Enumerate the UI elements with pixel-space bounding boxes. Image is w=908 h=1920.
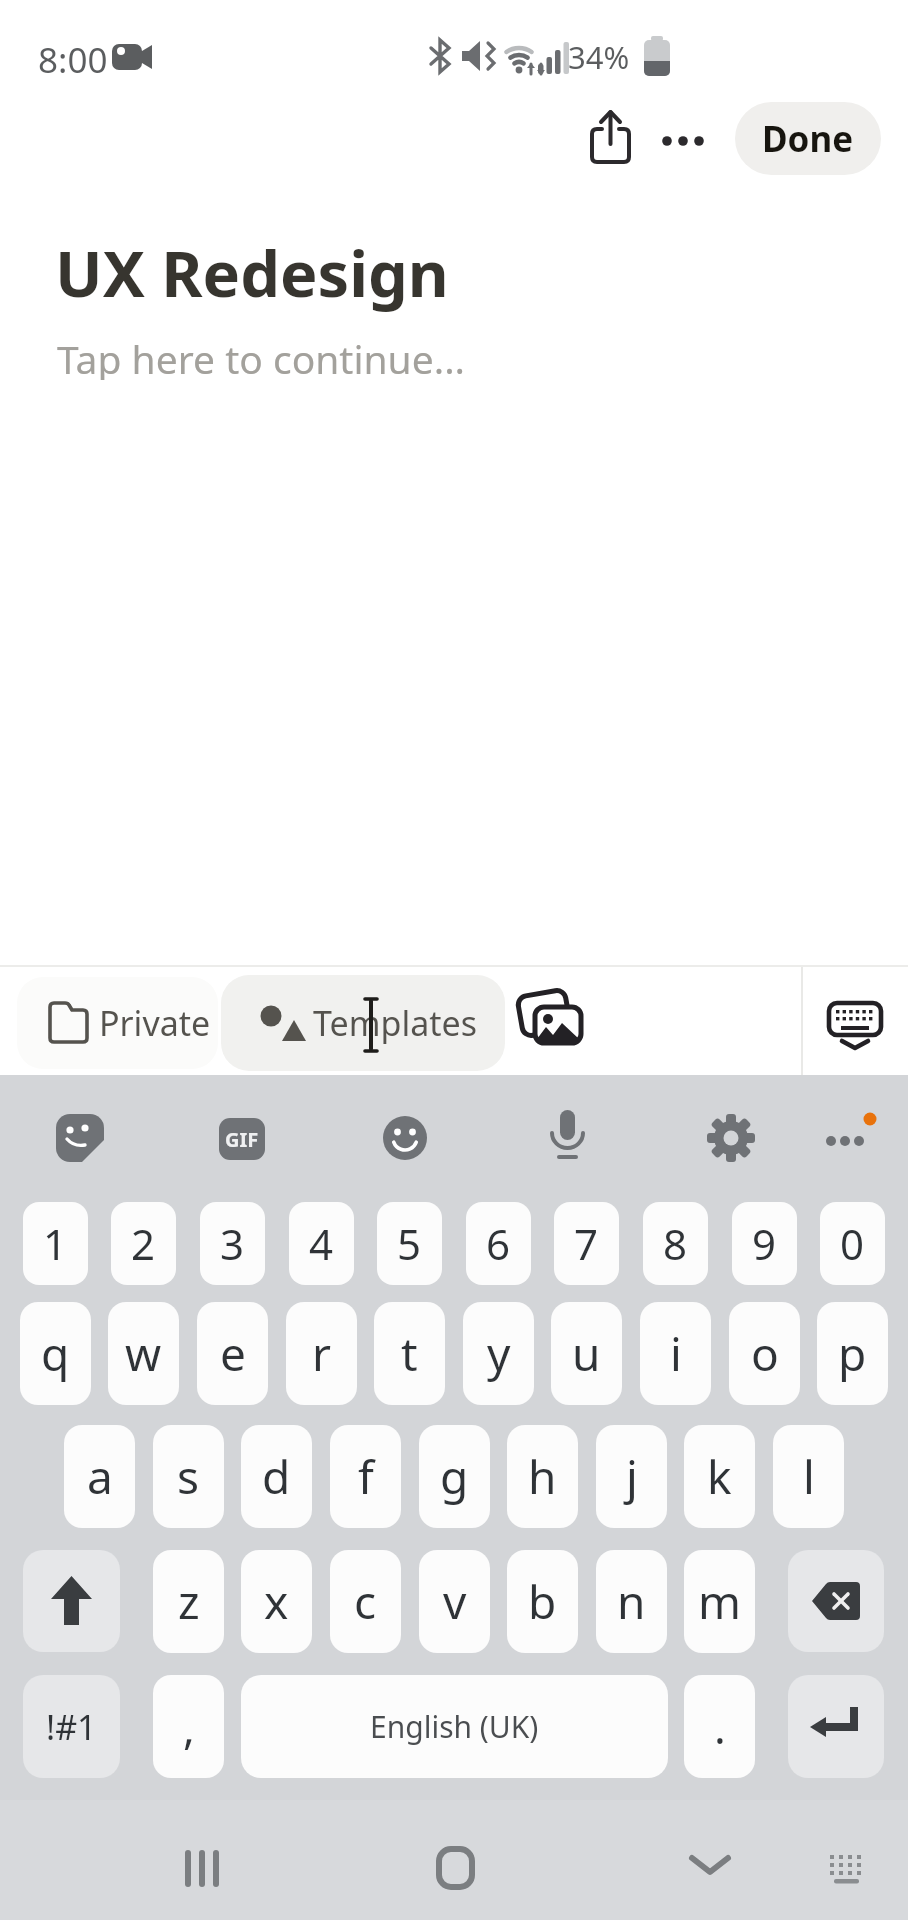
staticText: t: [401, 1322, 418, 1385]
button[interactable]: [383, 1116, 439, 1172]
button[interactable]: [512, 991, 586, 1065]
button[interactable]: l: [773, 1425, 844, 1528]
button[interactable]: p: [817, 1302, 888, 1405]
button[interactable]: [413, 1826, 497, 1910]
staticText: l: [803, 1445, 815, 1508]
staticText: e: [220, 1322, 246, 1385]
staticText: s: [177, 1445, 200, 1508]
staticText: 1: [43, 1215, 68, 1272]
staticText: English (UK): [370, 1706, 539, 1747]
staticText: k: [707, 1445, 732, 1508]
staticText: q: [41, 1322, 70, 1385]
staticText: !#1: [46, 1704, 97, 1750]
button[interactable]: [668, 1826, 752, 1910]
staticText: .: [714, 1697, 726, 1757]
staticText: m: [698, 1570, 742, 1633]
button[interactable]: c: [330, 1550, 401, 1653]
staticText: r: [312, 1322, 331, 1385]
staticText: GIF: [225, 1126, 259, 1153]
button[interactable]: 1: [23, 1202, 88, 1285]
button[interactable]: d: [241, 1425, 312, 1528]
staticText: z: [178, 1570, 200, 1633]
button[interactable]: a: [64, 1425, 135, 1528]
button[interactable]: [820, 993, 892, 1055]
staticText: d: [262, 1445, 291, 1508]
staticText: 7: [574, 1215, 599, 1272]
staticText: a: [87, 1445, 113, 1508]
button[interactable]: 5: [377, 1202, 442, 1285]
button[interactable]: s: [153, 1425, 224, 1528]
button[interactable]: m: [684, 1550, 755, 1653]
staticText: Private: [99, 1000, 211, 1046]
button[interactable]: q: [20, 1302, 91, 1405]
staticText: i: [670, 1322, 682, 1385]
button[interactable]: 4: [289, 1202, 354, 1285]
button[interactable]: n: [596, 1550, 667, 1653]
button[interactable]: [23, 1550, 120, 1652]
button[interactable]: w: [108, 1302, 179, 1405]
button[interactable]: [241, 1675, 668, 1778]
button[interactable]: z: [153, 1550, 224, 1653]
staticText: g: [440, 1445, 469, 1508]
button[interactable]: [545, 1110, 601, 1166]
button[interactable]: 6: [466, 1202, 531, 1285]
button[interactable]: b: [507, 1550, 578, 1653]
button[interactable]: u: [551, 1302, 622, 1405]
button[interactable]: [820, 1110, 876, 1166]
button[interactable]: [580, 102, 642, 174]
button[interactable]: Private: [17, 977, 218, 1069]
button[interactable]: Done: [735, 102, 881, 175]
staticText: 8: [663, 1215, 688, 1272]
button[interactable]: e: [197, 1302, 268, 1405]
staticText: v: [443, 1570, 467, 1633]
button[interactable]: i: [640, 1302, 711, 1405]
button[interactable]: Templates: [221, 975, 505, 1071]
staticText: 0: [840, 1215, 865, 1272]
button[interactable]: x: [241, 1550, 312, 1653]
staticText: Done: [762, 115, 854, 163]
button[interactable]: 8: [643, 1202, 708, 1285]
button[interactable]: [706, 1113, 762, 1169]
button[interactable]: g: [419, 1425, 490, 1528]
button[interactable]: [652, 116, 714, 166]
staticText: y: [487, 1322, 511, 1385]
button[interactable]: ,: [153, 1675, 224, 1778]
staticText: ,: [183, 1697, 195, 1757]
staticText: p: [838, 1322, 867, 1385]
button[interactable]: [56, 1114, 112, 1170]
staticText: c: [354, 1570, 377, 1633]
button[interactable]: j: [596, 1425, 667, 1528]
staticText: b: [528, 1570, 557, 1633]
staticText: n: [617, 1570, 646, 1633]
button[interactable]: v: [419, 1550, 490, 1653]
staticText: u: [572, 1322, 601, 1385]
button[interactable]: 7: [554, 1202, 619, 1285]
button[interactable]: t: [374, 1302, 445, 1405]
button[interactable]: o: [729, 1302, 800, 1405]
button[interactable]: h: [507, 1425, 578, 1528]
button[interactable]: f: [330, 1425, 401, 1528]
staticText: 34%: [568, 36, 630, 78]
button[interactable]: k: [684, 1425, 755, 1528]
button[interactable]: y: [463, 1302, 534, 1405]
staticText: Templates: [313, 1000, 477, 1046]
button[interactable]: .: [684, 1675, 755, 1778]
button[interactable]: [788, 1675, 884, 1778]
button[interactable]: 3: [200, 1202, 265, 1285]
staticText: Tap here to continue...: [57, 332, 466, 380]
button[interactable]: r: [286, 1302, 357, 1405]
button[interactable]: !#1: [23, 1675, 120, 1778]
button[interactable]: [820, 1838, 880, 1898]
staticText: w: [125, 1322, 162, 1385]
button[interactable]: [160, 1826, 244, 1910]
button[interactable]: GIF: [219, 1118, 265, 1160]
staticText: 9: [752, 1215, 777, 1272]
button[interactable]: 9: [732, 1202, 797, 1285]
button[interactable]: [788, 1550, 884, 1652]
button[interactable]: 2: [111, 1202, 176, 1285]
staticText: j: [626, 1445, 638, 1508]
staticText: f: [358, 1445, 374, 1508]
button[interactable]: 0: [820, 1202, 885, 1285]
staticText: x: [264, 1570, 289, 1633]
staticText: 2: [131, 1215, 156, 1272]
